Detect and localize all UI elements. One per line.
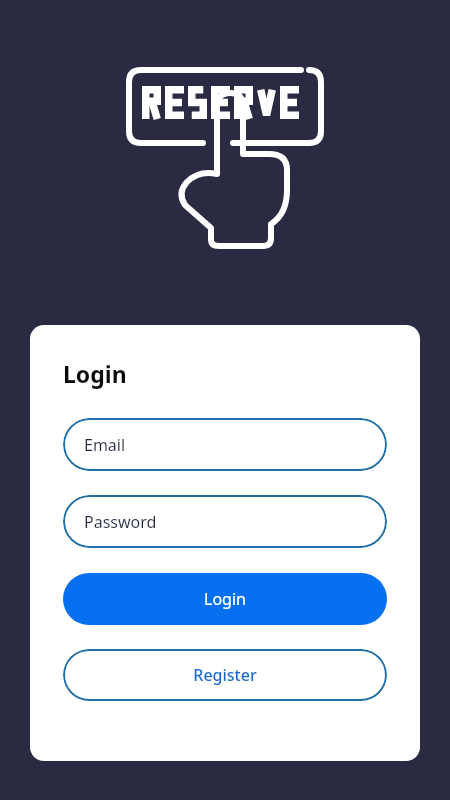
staticText: Password [84,511,157,533]
button[interactable]: Email [63,418,387,471]
button[interactable]: Register [63,649,387,701]
button[interactable]: Password [63,495,387,548]
staticText: Email [84,434,126,456]
staticText: Login [63,358,127,389]
button[interactable]: Login [63,573,387,625]
staticText: Login [204,588,246,610]
staticText: Register [193,664,257,686]
